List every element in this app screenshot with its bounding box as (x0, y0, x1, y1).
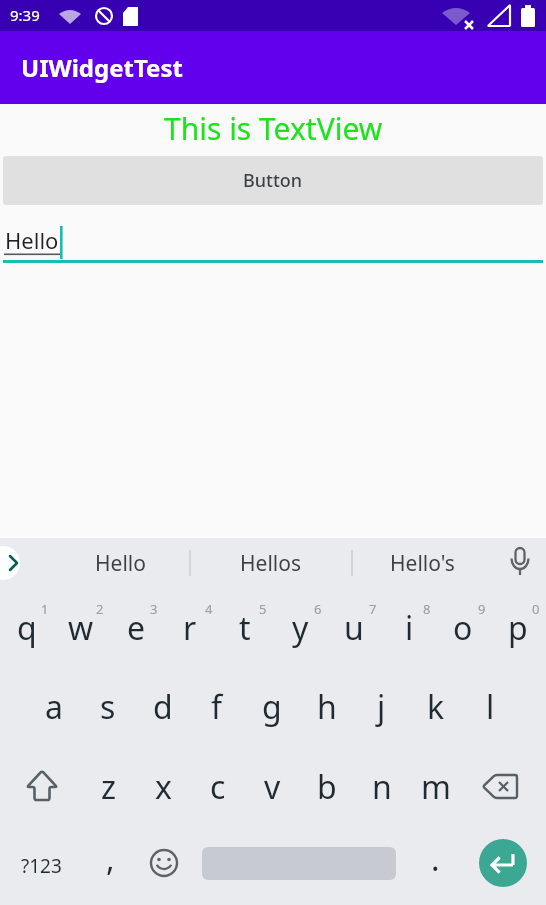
button[interactable]: b (301, 759, 353, 815)
button[interactable]: a (28, 679, 80, 735)
button[interactable]: v (246, 759, 298, 815)
button[interactable]: z (83, 759, 135, 815)
button[interactable]: Hello (60, 538, 180, 588)
staticText: This is TextView (164, 108, 383, 149)
button[interactable]: Hello's (362, 538, 482, 588)
staticText: Hellos (240, 549, 302, 578)
button[interactable]: Button (3, 156, 543, 205)
staticText: t (239, 606, 251, 650)
staticText: 3 (150, 600, 158, 618)
staticText: 5 (259, 600, 267, 618)
staticText: a (45, 685, 63, 729)
button[interactable]: j (355, 679, 407, 735)
button[interactable]: l (464, 679, 516, 735)
button[interactable]: e (110, 600, 162, 656)
staticText: 9 (478, 600, 486, 618)
staticText: i (405, 606, 414, 650)
button[interactable]: m (410, 759, 462, 815)
button[interactable]: w (55, 600, 107, 656)
staticText: s (100, 685, 116, 729)
button[interactable]: r (164, 600, 216, 656)
button[interactable]: q (1, 600, 53, 656)
button[interactable]: f (191, 679, 243, 735)
staticText: n (372, 765, 392, 809)
button[interactable]: Hellos (211, 538, 331, 588)
staticText: 8 (423, 600, 431, 618)
staticText: d (153, 685, 173, 729)
button[interactable]: c (192, 759, 244, 815)
staticText: 9:39 (10, 5, 40, 25)
button[interactable]: d (137, 679, 189, 735)
staticText: , (106, 837, 115, 881)
staticText: o (453, 606, 473, 650)
button[interactable]: x (137, 759, 189, 815)
button[interactable]: ?123 (15, 838, 67, 894)
button[interactable]: n (356, 759, 408, 815)
button[interactable]: t (219, 600, 271, 656)
staticText: k (427, 685, 445, 729)
button[interactable]: o (437, 600, 489, 656)
staticText: u (344, 606, 364, 650)
staticText: j (377, 685, 386, 729)
staticText: w (68, 606, 94, 650)
staticText: r (183, 606, 197, 650)
staticText: 7 (369, 600, 377, 618)
button[interactable]: . (409, 831, 461, 887)
button[interactable]: k (410, 679, 462, 735)
staticText: 0 (532, 600, 540, 618)
staticText: UIWidgetTest (21, 51, 183, 84)
staticText: 4 (205, 600, 213, 618)
staticText: . (431, 837, 440, 881)
staticText: ?123 (21, 853, 62, 879)
staticText: p (508, 606, 528, 650)
staticText: 6 (314, 600, 322, 618)
staticText: 2 (96, 600, 104, 618)
button[interactable]: Hello (5, 225, 59, 255)
staticText: l (486, 685, 495, 729)
staticText: e (127, 606, 146, 650)
staticText: Button (243, 168, 303, 193)
staticText: z (101, 765, 117, 809)
staticText: v (264, 765, 281, 809)
staticText: q (17, 606, 37, 650)
staticText: Hello (95, 549, 146, 578)
staticText: Hello's (390, 549, 455, 578)
button[interactable] (479, 839, 527, 887)
button[interactable]: u (328, 600, 380, 656)
staticText: x (155, 765, 172, 809)
button[interactable]: i (383, 600, 435, 656)
staticText: c (210, 765, 226, 809)
staticText: m (421, 765, 451, 809)
button[interactable]: p (492, 600, 544, 656)
staticText: b (317, 765, 337, 809)
staticText: y (292, 606, 309, 650)
staticText: f (211, 685, 223, 729)
button[interactable]: h (301, 679, 353, 735)
staticText: g (262, 685, 282, 729)
button[interactable]: , (84, 831, 136, 887)
staticText: 1 (41, 600, 49, 618)
button[interactable]: s (82, 679, 134, 735)
staticText: h (317, 685, 337, 729)
button[interactable]: y (274, 600, 326, 656)
button[interactable]: g (246, 679, 298, 735)
